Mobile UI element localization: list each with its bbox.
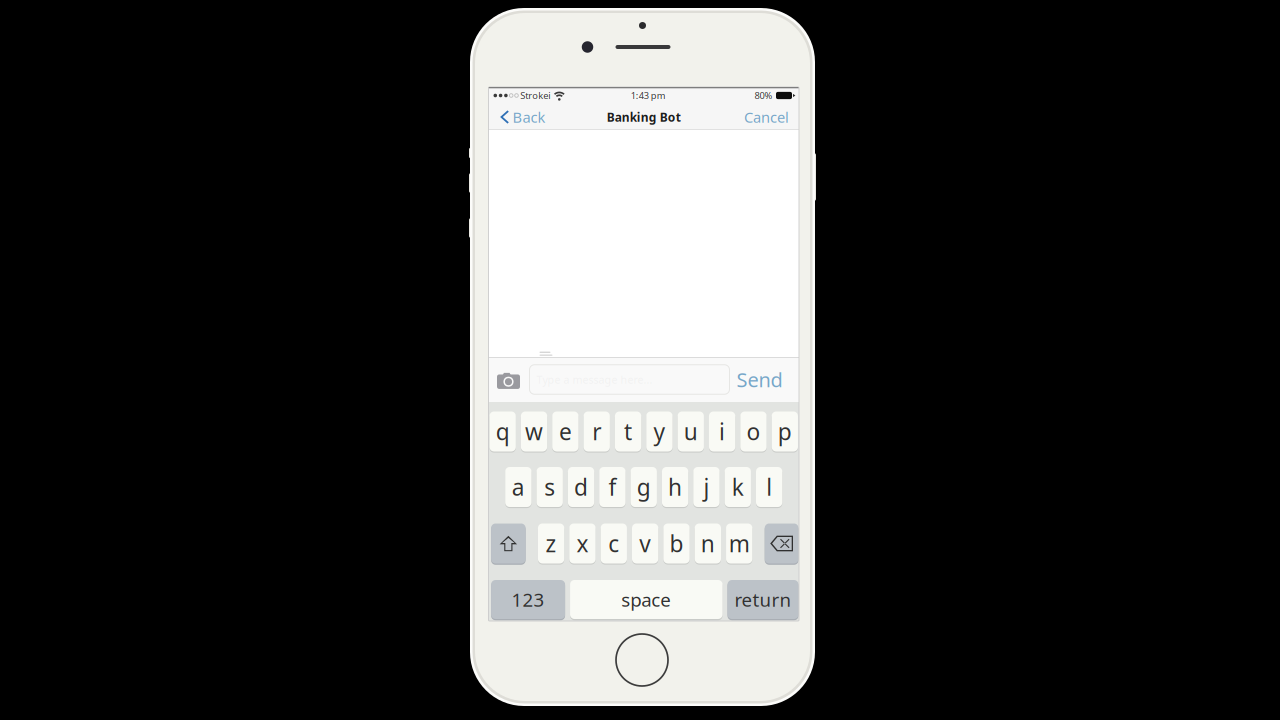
staticText: k <box>732 472 744 502</box>
staticText: p <box>778 416 792 446</box>
staticText: w <box>525 416 543 446</box>
staticText: v <box>639 528 651 558</box>
staticText: Send <box>736 366 782 393</box>
staticText: f <box>608 472 616 502</box>
button[interactable]: q <box>489 411 516 451</box>
staticText: t <box>624 416 632 446</box>
staticText: m <box>729 528 750 558</box>
button[interactable]: Cancel <box>738 104 799 130</box>
staticText: i <box>719 416 725 446</box>
button[interactable]: h <box>662 467 688 507</box>
button[interactable]: n <box>695 523 721 563</box>
button[interactable]: b <box>663 523 690 563</box>
staticText: c <box>608 528 619 558</box>
button[interactable]: y <box>646 411 673 451</box>
button[interactable]: Back <box>488 104 551 130</box>
staticText: h <box>668 472 682 502</box>
staticText: n <box>701 528 715 558</box>
staticText: 1:43 pm <box>631 89 666 102</box>
button[interactable]: m <box>726 523 752 563</box>
staticText: a <box>512 472 525 502</box>
staticText: e <box>559 416 572 446</box>
staticText: 123 <box>512 587 545 612</box>
button[interactable]: r <box>584 411 610 451</box>
button[interactable]: Camera <box>497 369 520 389</box>
staticText: g <box>637 472 651 502</box>
button[interactable]: l <box>756 467 782 507</box>
button[interactable]: p <box>772 411 798 451</box>
button[interactable]: c <box>601 523 627 563</box>
staticText: q <box>496 416 510 446</box>
staticText: o <box>746 416 760 446</box>
button[interactable]: u <box>678 411 704 451</box>
button[interactable]: g <box>631 467 657 507</box>
staticText: y <box>653 416 665 446</box>
staticText: x <box>576 528 588 558</box>
staticText: d <box>574 472 588 502</box>
button[interactable]: e <box>552 411 578 451</box>
button[interactable]: a <box>505 467 531 507</box>
staticText: u <box>684 416 698 446</box>
button[interactable]: v <box>632 523 658 563</box>
staticText: Banking Bot <box>607 109 681 125</box>
button[interactable]: x <box>569 523 596 563</box>
staticText: Cancel <box>744 107 789 127</box>
staticText: Back <box>512 107 545 127</box>
button[interactable]: Send <box>736 366 782 393</box>
staticText: return <box>734 587 791 612</box>
staticText: j <box>703 472 709 502</box>
staticText: b <box>669 528 683 558</box>
button[interactable]: w <box>521 411 547 451</box>
staticText: 80% <box>754 89 772 102</box>
staticText: l <box>766 472 772 502</box>
button[interactable]: Shift <box>491 523 526 563</box>
staticText: space <box>621 587 671 612</box>
button[interactable]: s <box>536 467 563 507</box>
button[interactable]: i <box>709 411 735 451</box>
button[interactable]: o <box>740 411 767 451</box>
button[interactable]: z <box>538 523 564 563</box>
button[interactable]: space <box>570 580 722 619</box>
button[interactable]: f <box>599 467 625 507</box>
button[interactable]: 123 <box>491 580 565 619</box>
button[interactable]: Delete <box>765 523 798 563</box>
button[interactable]: d <box>568 467 594 507</box>
button[interactable]: j <box>693 467 720 507</box>
button[interactable]: return <box>727 580 798 619</box>
button[interactable]: t <box>615 411 641 451</box>
staticText: s <box>544 472 555 502</box>
button[interactable]: k <box>725 467 751 507</box>
staticText: r <box>592 416 601 446</box>
staticText: z <box>546 528 557 558</box>
staticText: Strokei <box>518 89 550 102</box>
